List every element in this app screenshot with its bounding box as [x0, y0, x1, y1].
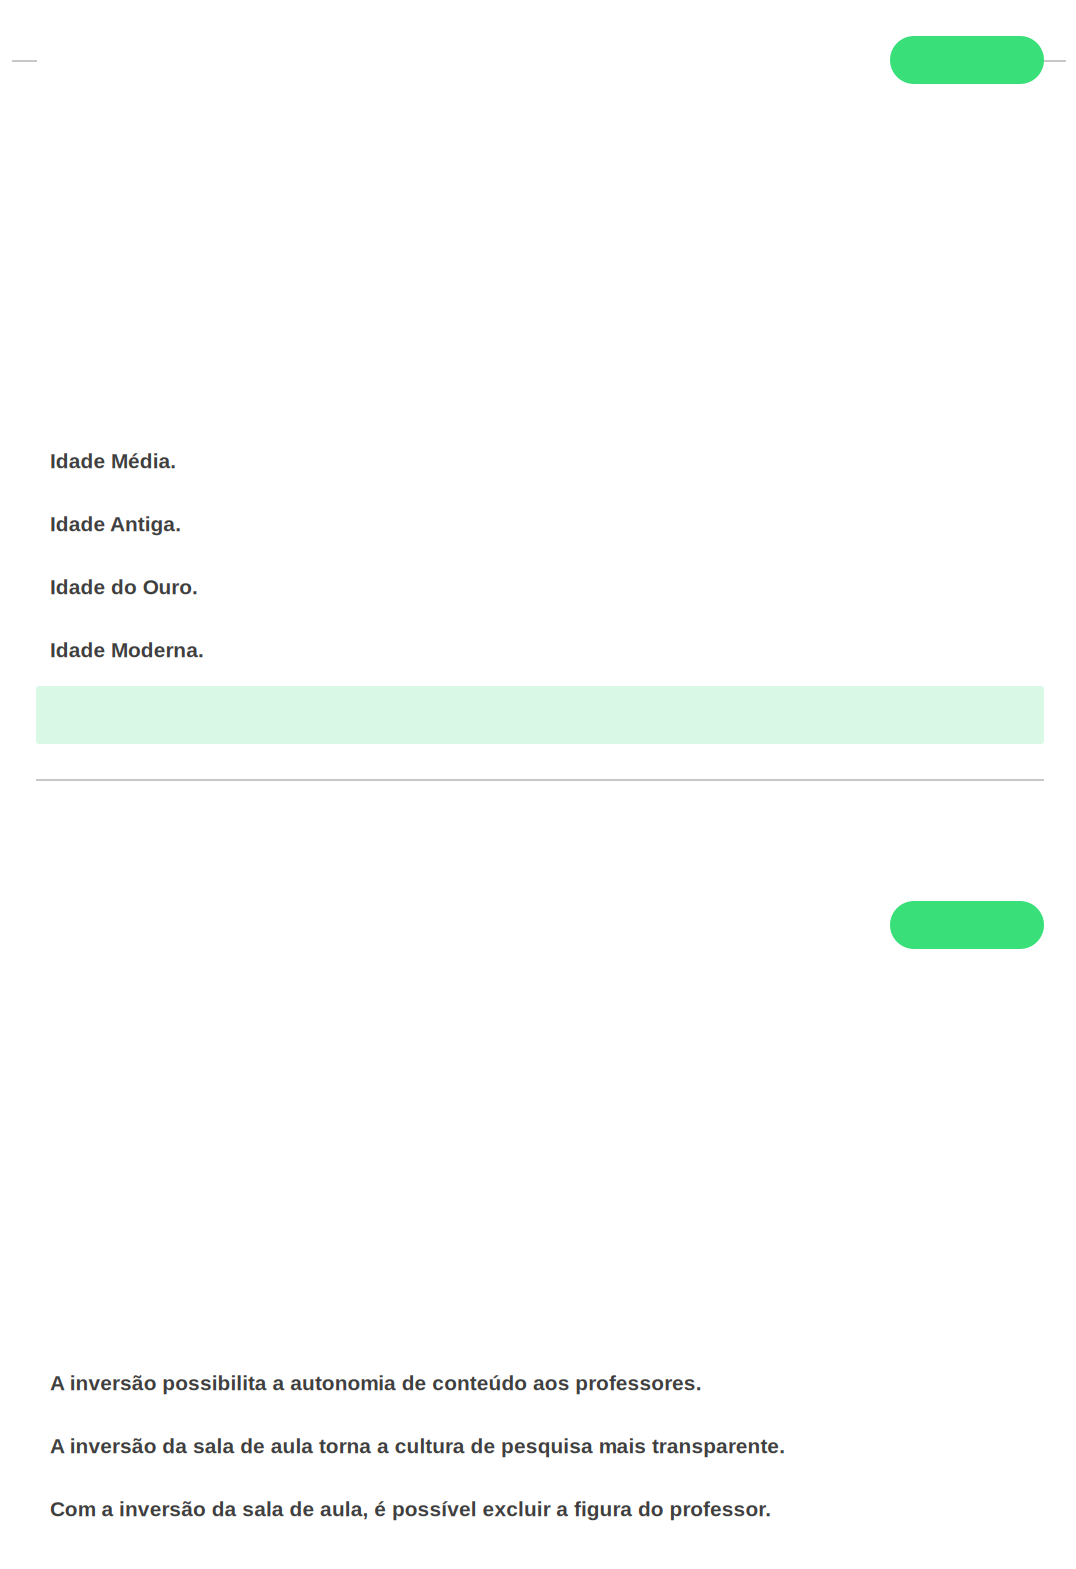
staticText: Idade Moderna.: [50, 638, 204, 662]
button[interactable]: Idade Moderna.: [50, 640, 1040, 660]
button[interactable]: Idade do Ouro.: [50, 577, 1040, 597]
staticText: Idade Média.: [50, 449, 176, 473]
button[interactable]: Idade Média.: [50, 451, 1040, 471]
button[interactable]: Responder: [890, 36, 1044, 84]
button[interactable]: Com a inversão da sala de aula, é possív…: [50, 1499, 1040, 1519]
button[interactable]: Próxima questão: [890, 901, 1044, 949]
button[interactable]: Idade Antiga.: [50, 514, 1040, 534]
button[interactable]: A inversão possibilita a autonomia de co…: [50, 1373, 1040, 1393]
staticText: Idade do Ouro.: [50, 575, 198, 599]
staticText: Idade Antiga.: [50, 512, 181, 536]
staticText: Com a inversão da sala de aula, é possív…: [50, 1497, 771, 1521]
staticText: A inversão da sala de aula torna a cultu…: [50, 1434, 785, 1458]
staticText: A inversão possibilita a autonomia de co…: [50, 1371, 702, 1395]
button[interactable]: A inversão da sala de aula torna a cultu…: [50, 1436, 1040, 1456]
